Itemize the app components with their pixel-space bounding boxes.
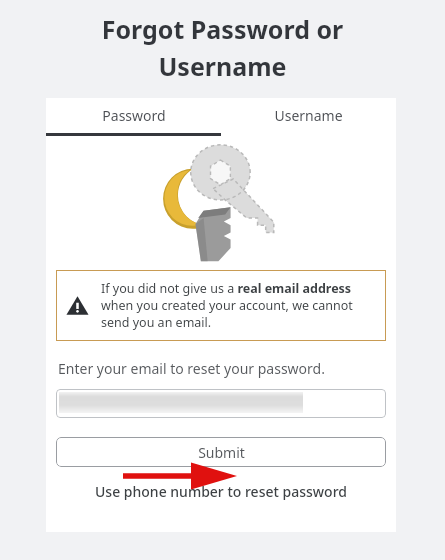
staticText: Forgot Password or bbox=[0, 12, 445, 46]
button[interactable]: Use phone number to reset password bbox=[46, 482, 396, 501]
staticText: If you did not give us a real email addr… bbox=[101, 280, 376, 331]
button[interactable]: Submit bbox=[56, 437, 386, 467]
staticText: Username bbox=[274, 106, 343, 125]
staticText: Use phone number to reset password bbox=[95, 482, 347, 501]
staticText: Username bbox=[0, 49, 445, 83]
button[interactable]: Password bbox=[46, 98, 221, 133]
button[interactable] bbox=[56, 389, 386, 418]
other: Warning bbox=[66, 294, 89, 317]
staticText: Password bbox=[102, 106, 166, 125]
staticText: Submit bbox=[198, 443, 245, 462]
button[interactable]: Username bbox=[221, 98, 396, 133]
staticText: Enter your email to reset your password. bbox=[58, 359, 325, 378]
